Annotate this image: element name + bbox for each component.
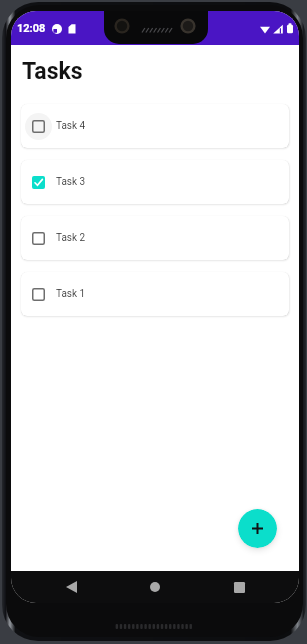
button[interactable]: Task 1 (21, 272, 289, 316)
button[interactable]: Back (56, 572, 86, 602)
staticText: Task 2 (56, 232, 86, 244)
button[interactable]: Recent apps (224, 572, 254, 602)
button[interactable]: Task 2 (21, 216, 289, 260)
button[interactable]: Home (140, 572, 170, 602)
staticText: Tasks (22, 58, 83, 85)
staticText: Task 3 (56, 176, 86, 188)
button[interactable]: Task 4 (21, 104, 289, 148)
staticText: 12:08 (17, 22, 46, 35)
staticText: Task 1 (56, 288, 86, 300)
staticText: Task 4 (56, 120, 86, 132)
button[interactable]: Add task (238, 509, 277, 548)
button[interactable]: Task 3 (21, 160, 289, 204)
